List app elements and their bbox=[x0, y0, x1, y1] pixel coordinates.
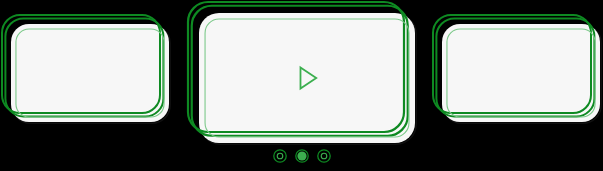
button[interactable]: Play video bbox=[186, 0, 420, 148]
button[interactable] bbox=[0, 13, 172, 125]
button[interactable]: Slide 2, current bbox=[295, 149, 309, 163]
other: Media carousel bbox=[0, 0, 603, 150]
button[interactable] bbox=[431, 13, 603, 125]
button[interactable]: Go to slide 1 bbox=[273, 149, 287, 163]
button[interactable]: Go to slide 3 bbox=[317, 149, 331, 163]
